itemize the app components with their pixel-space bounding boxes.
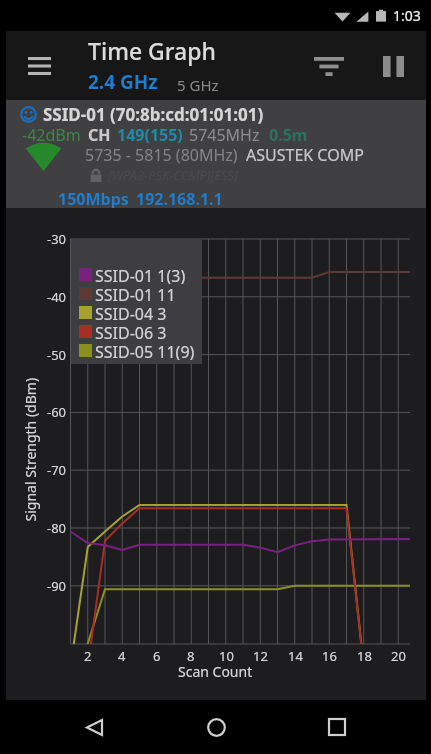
- button[interactable]: 2.4 GHz: [88, 69, 158, 95]
- staticText: 150Mbps: [58, 188, 129, 208]
- staticText: 5735 - 5815 (80MHz): [85, 144, 238, 166]
- staticText: Signal Strength (dBm): [20, 377, 39, 521]
- button[interactable]: Back: [66, 700, 122, 754]
- button[interactable]: Filter: [305, 42, 353, 90]
- staticText: 18: [357, 647, 372, 665]
- staticText: -50: [47, 346, 67, 364]
- staticText: 5745MHz: [189, 124, 260, 146]
- staticText: 1:03: [393, 6, 421, 25]
- staticText: SSID-01 (70:8b:cd:01:01:01): [43, 103, 264, 126]
- staticText: 4: [118, 647, 126, 665]
- staticText: 0.5m: [269, 124, 308, 146]
- staticText: -42dBm: [22, 124, 81, 146]
- staticText: 5 GHz: [177, 75, 219, 95]
- staticText: Time Graph: [88, 35, 216, 66]
- staticText: -40: [47, 288, 67, 306]
- staticText: SSID-04 3: [95, 303, 167, 322]
- staticText: SSID-01 1(3): [95, 265, 186, 284]
- staticText: ASUSTEK COMP: [246, 144, 364, 166]
- button[interactable]: Home: [188, 700, 244, 754]
- staticText: SSID-01 11: [95, 284, 176, 303]
- staticText: CH: [88, 124, 111, 146]
- staticText: 6: [153, 647, 161, 665]
- staticText: -30: [47, 230, 67, 248]
- staticText: Scan Count: [178, 662, 253, 681]
- button[interactable]: 5 GHz: [177, 75, 219, 95]
- staticText: 8: [187, 647, 195, 665]
- staticText: 192.168.1.1: [136, 188, 223, 208]
- staticText: 2.4 GHz: [88, 69, 158, 95]
- staticText: 20: [391, 647, 406, 665]
- button[interactable]: Pause: [371, 44, 415, 88]
- staticText: -80: [47, 519, 67, 537]
- staticText: SSID-05 11(9): [95, 341, 195, 360]
- staticText: 149(155): [117, 124, 183, 146]
- staticText: 16: [322, 647, 337, 665]
- staticText: SSID-06 3: [95, 322, 167, 341]
- staticText: 14: [288, 647, 303, 665]
- staticText: 10: [219, 647, 234, 665]
- button[interactable]: Recent apps: [309, 700, 365, 754]
- button[interactable]: Open navigation menu: [17, 44, 61, 88]
- staticText: 2: [84, 647, 92, 665]
- staticText: -90: [47, 577, 67, 595]
- staticText: -70: [47, 461, 67, 479]
- button[interactable]: SSID-01 (70:8b:cd:01:01:01): [6, 100, 426, 208]
- staticText: 12: [253, 647, 268, 665]
- staticText: -60: [47, 403, 67, 421]
